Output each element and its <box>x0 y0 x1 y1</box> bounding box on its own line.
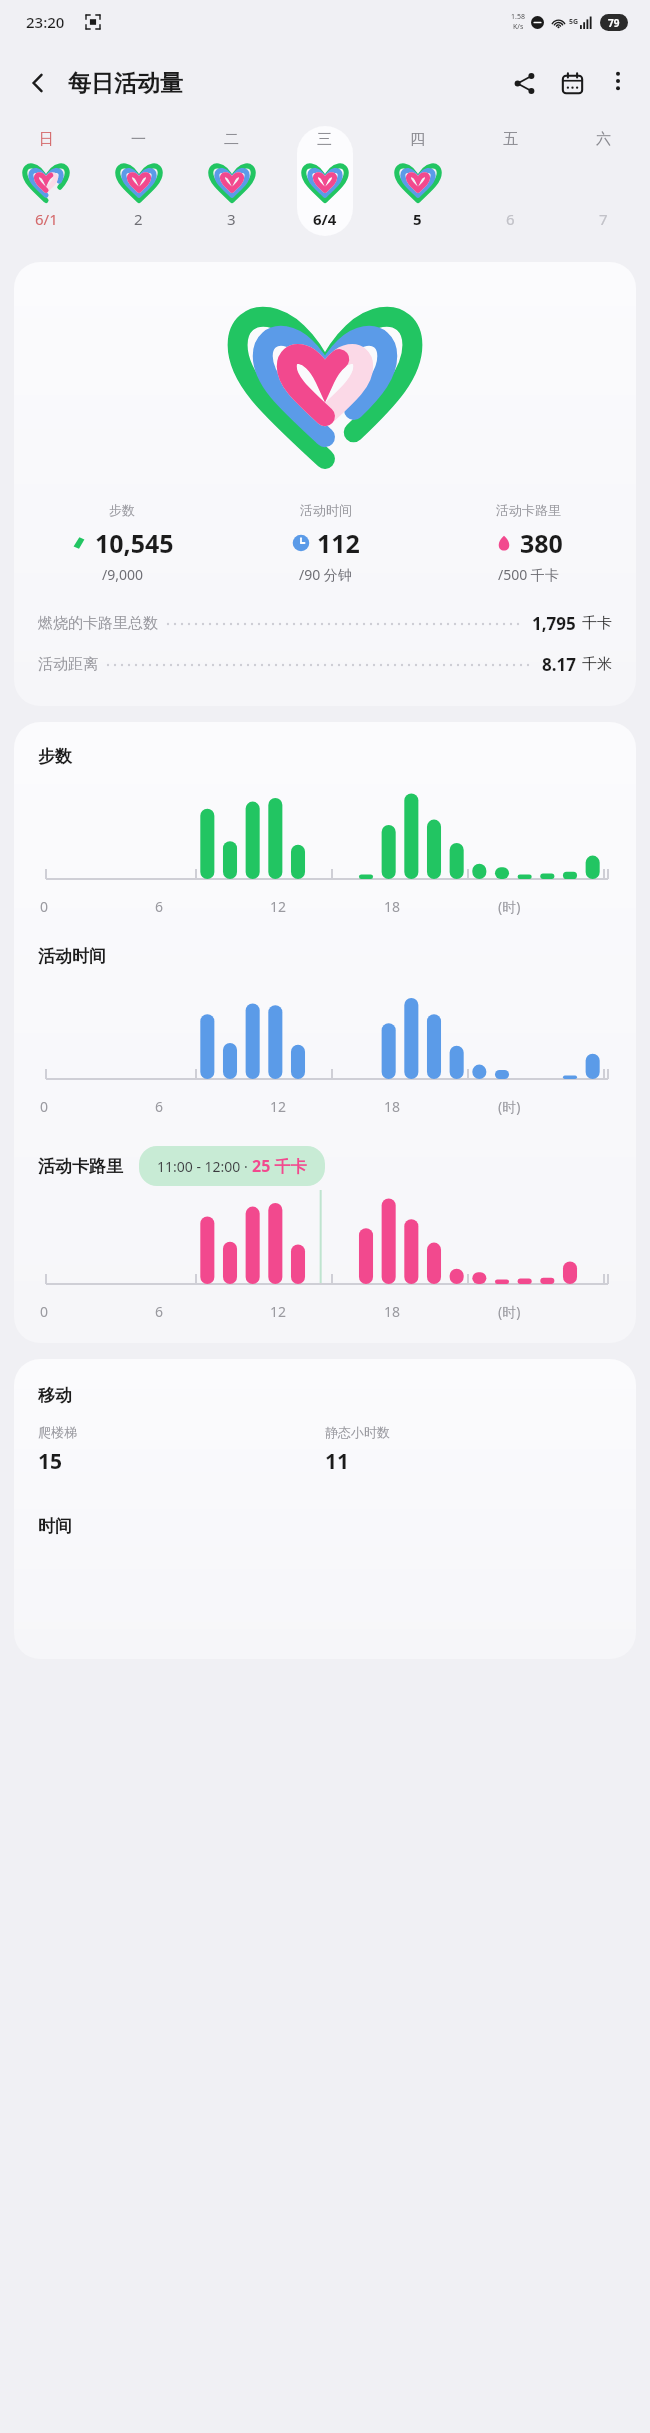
staticText: 5 <box>413 209 422 229</box>
staticText: 18 <box>384 1302 401 1321</box>
staticText: 一 <box>131 130 146 149</box>
staticText: 10,545 <box>95 526 174 560</box>
staticText: 静态小时数 <box>325 1424 390 1440</box>
staticText: 11 <box>325 1447 350 1476</box>
staticText: 6 <box>155 1097 164 1116</box>
button[interactable]: Calendar <box>548 59 596 107</box>
staticText: 1.58 <box>511 12 525 22</box>
button[interactable]: Back <box>14 59 62 107</box>
staticText: 18 <box>384 1097 401 1116</box>
staticText: 6 <box>506 209 515 229</box>
button[interactable]: 11:00 - 12:00 · <box>157 1155 307 1177</box>
staticText: (时) <box>498 1302 521 1321</box>
staticText: 380 <box>520 526 563 560</box>
staticText: 燃烧的卡路里总数 <box>38 614 158 633</box>
button[interactable]: 燃烧的卡路里总数 <box>38 612 612 635</box>
staticText: 0 <box>40 1302 49 1321</box>
staticText: 活动卡路里 <box>38 1156 123 1177</box>
button[interactable]: 六 <box>557 122 650 248</box>
staticText: 0 <box>40 1097 49 1116</box>
staticText: /9,000 <box>102 565 143 584</box>
staticText: 爬楼梯 <box>38 1424 77 1440</box>
staticText: (时) <box>498 897 521 916</box>
staticText: 7 <box>599 209 608 229</box>
staticText: 三 <box>317 130 332 149</box>
staticText: 活动距离 <box>38 655 98 674</box>
staticText: 二 <box>224 130 239 149</box>
button[interactable]: 三 <box>278 122 371 248</box>
staticText: 1,795 <box>532 612 576 635</box>
staticText: 6/1 <box>35 209 58 229</box>
staticText: 23:20 <box>26 12 65 32</box>
staticText: 5G <box>569 17 579 27</box>
staticText: 79 <box>608 16 620 30</box>
staticText: 6 <box>155 897 164 916</box>
staticText: 6 <box>155 1302 164 1321</box>
button[interactable]: 活动时间 <box>224 502 427 584</box>
staticText: /500 千卡 <box>498 565 559 584</box>
staticText: /90 分钟 <box>299 565 352 584</box>
staticText: 11:00 - 12:00 · <box>157 1157 252 1176</box>
staticText: 活动时间 <box>38 946 106 967</box>
staticText: 日 <box>39 130 54 149</box>
staticText: 五 <box>503 130 518 149</box>
staticText: 15 <box>38 1447 63 1476</box>
button[interactable]: Share <box>500 59 548 107</box>
button[interactable]: 活动距离 <box>38 653 612 676</box>
staticText: 12 <box>270 1302 287 1321</box>
button[interactable]: 五 <box>464 122 557 248</box>
staticText: 千卡 <box>582 614 612 633</box>
button[interactable]: 活动卡路里 <box>427 502 630 584</box>
staticText: 12 <box>270 1097 287 1116</box>
staticText: 四 <box>410 130 425 149</box>
staticText: 六 <box>596 130 611 149</box>
staticText: 千米 <box>582 655 612 674</box>
staticText: 3 <box>227 209 236 229</box>
staticText: 25 千卡 <box>252 1155 307 1177</box>
staticText: K/s <box>513 22 524 32</box>
staticText: 每日活动量 <box>68 69 183 98</box>
staticText: 步数 <box>38 746 72 767</box>
staticText: 6/4 <box>313 209 337 229</box>
button[interactable]: 二 <box>185 122 278 248</box>
button[interactable]: 步数 <box>20 502 224 584</box>
button[interactable]: 一 <box>92 122 185 248</box>
staticText: 移动 <box>38 1385 72 1406</box>
staticText: 活动卡路里 <box>496 502 561 518</box>
staticText: 步数 <box>109 502 135 518</box>
staticText: 18 <box>384 897 401 916</box>
button[interactable]: 日 <box>0 122 92 248</box>
button[interactable]: More options <box>596 59 640 103</box>
staticText: 112 <box>317 526 360 560</box>
staticText: 12 <box>270 897 287 916</box>
staticText: 时间 <box>38 1516 72 1537</box>
staticText: 0 <box>40 897 49 916</box>
staticText: (时) <box>498 1097 521 1116</box>
staticText: 8.17 <box>542 653 576 676</box>
button[interactable]: 四 <box>371 122 464 248</box>
staticText: 活动时间 <box>300 502 352 518</box>
staticText: 2 <box>134 209 143 229</box>
